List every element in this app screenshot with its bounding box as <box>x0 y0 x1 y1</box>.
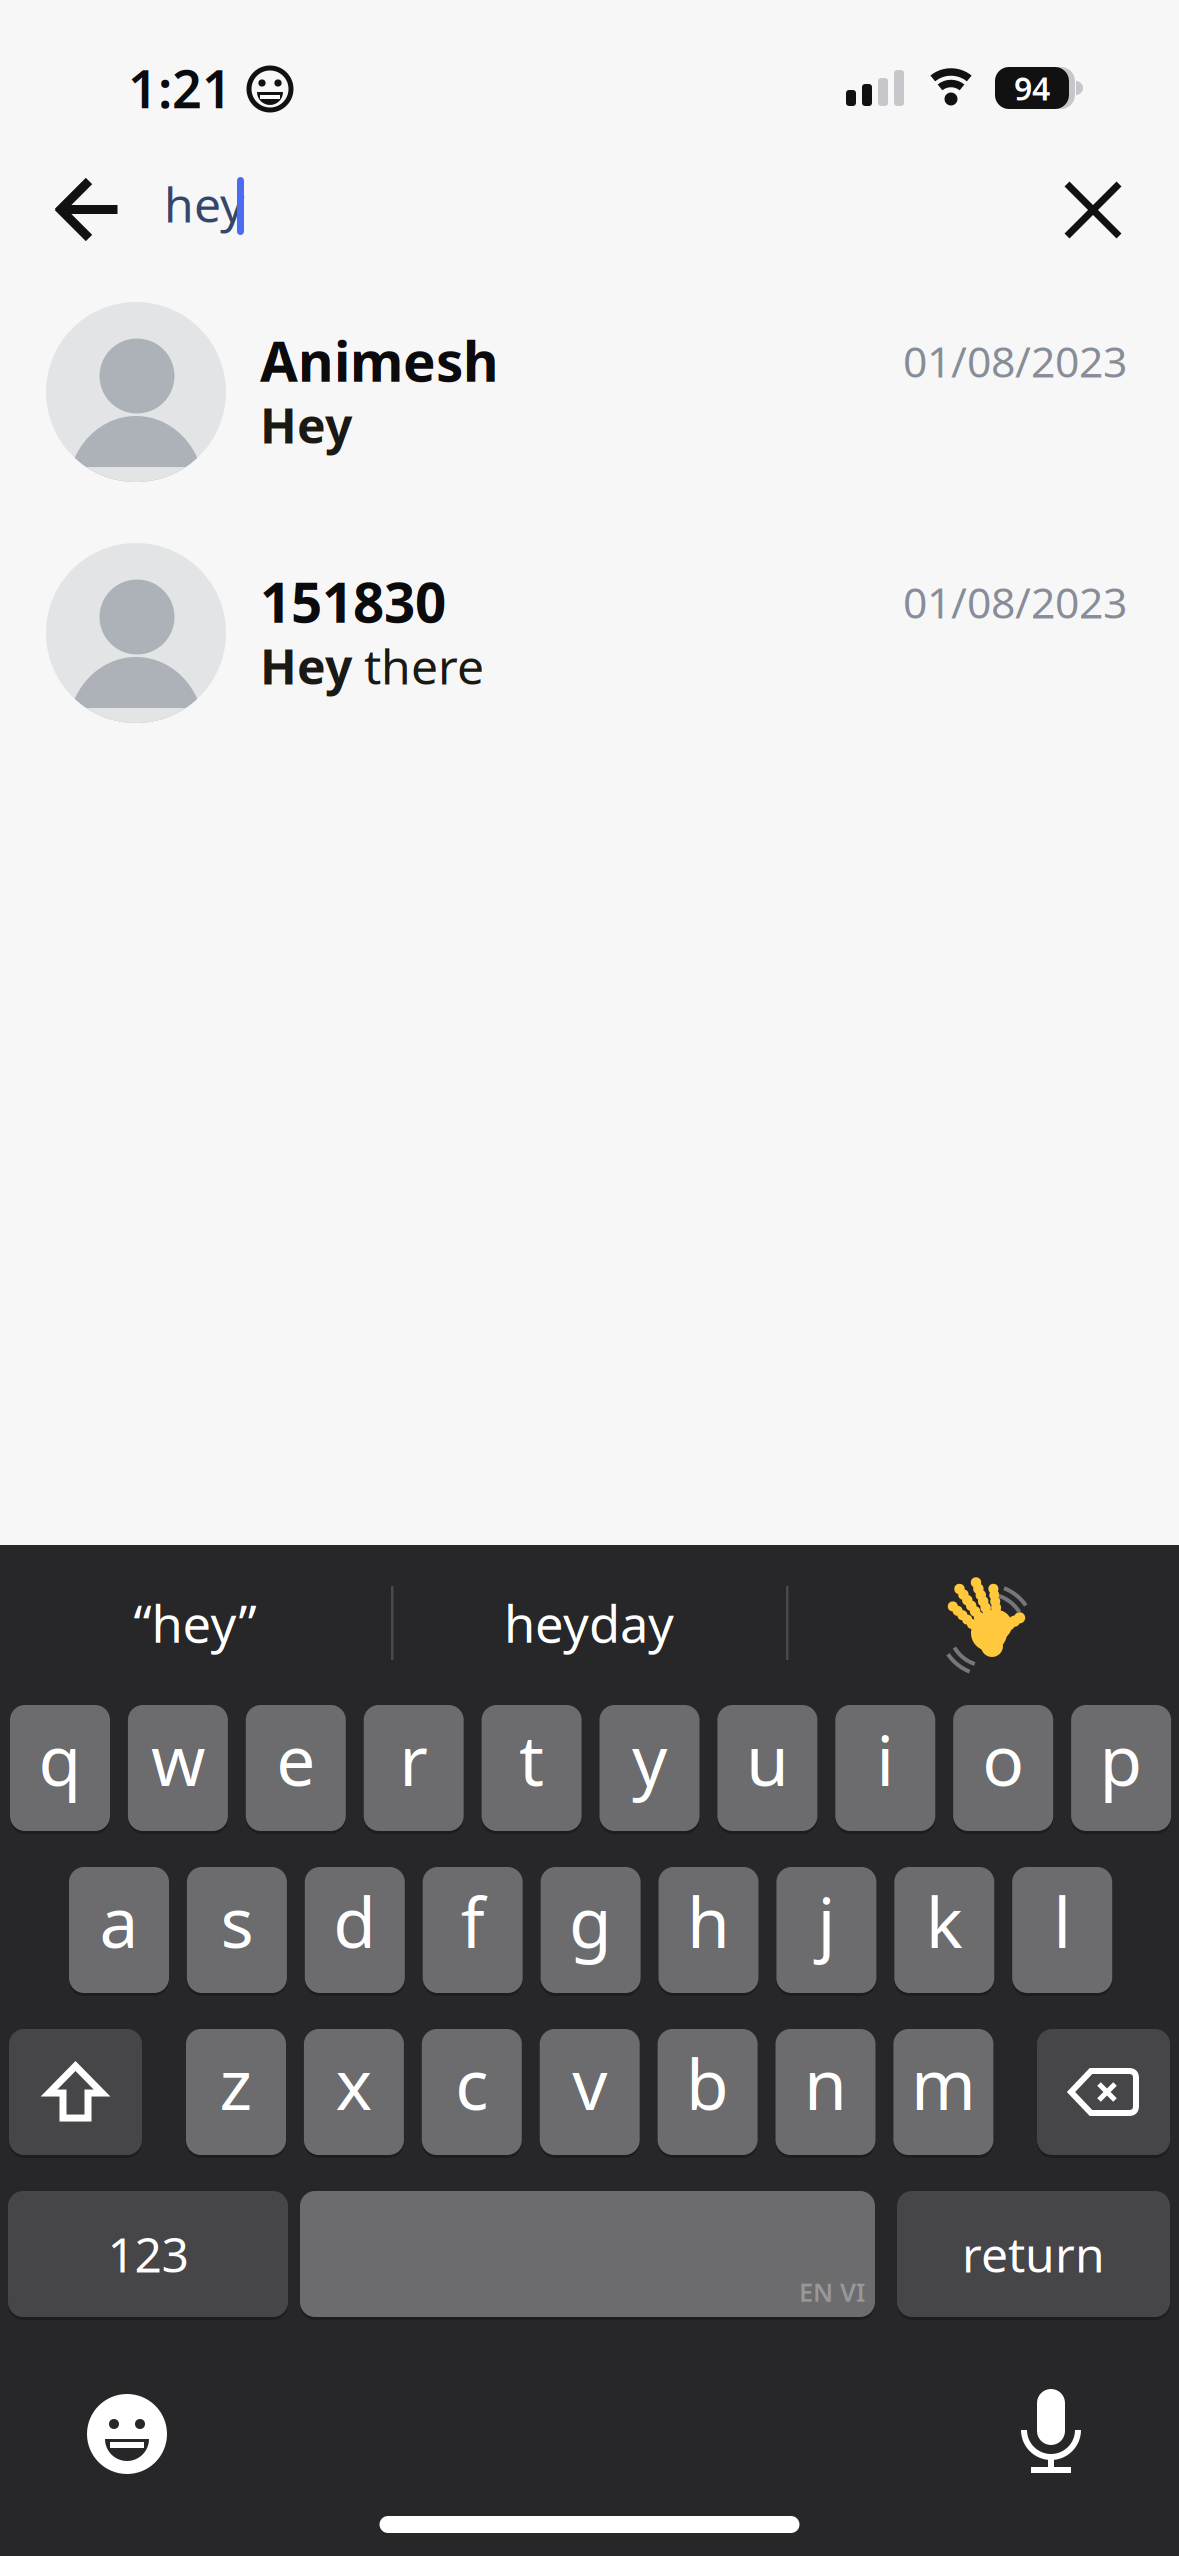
button[interactable]: d <box>305 1867 405 1993</box>
staticText: z <box>219 2037 252 2129</box>
staticText: 94 <box>1014 67 1050 109</box>
staticText: v <box>572 2037 607 2129</box>
staticText: r <box>399 1713 428 1805</box>
staticText: q <box>38 1713 81 1805</box>
staticText: 01/08/2023 <box>903 574 1127 630</box>
button[interactable]: j <box>776 1867 876 1993</box>
staticText: return <box>962 2222 1105 2286</box>
staticText: o <box>982 1713 1024 1805</box>
staticText: t <box>519 1713 544 1805</box>
staticText: “hey” <box>133 1589 256 1657</box>
staticText: h <box>687 1875 730 1967</box>
staticText: f <box>461 1875 485 1967</box>
button[interactable]: 123 <box>8 2191 288 2317</box>
staticText: i <box>876 1713 894 1805</box>
staticText: a <box>99 1875 138 1967</box>
staticText: x <box>335 2037 372 2129</box>
button[interactable]: i <box>835 1705 935 1831</box>
button[interactable]: Back <box>39 159 139 259</box>
staticText: u <box>746 1713 789 1805</box>
button[interactable]: c <box>422 2029 522 2155</box>
button[interactable]: hey <box>164 159 864 249</box>
staticText: b <box>686 2037 729 2129</box>
button[interactable]: Insert waving hand emoji <box>791 1548 1177 1698</box>
staticText: c <box>455 2037 488 2129</box>
staticText: m <box>911 2037 976 2129</box>
button[interactable]: s <box>187 1867 287 1993</box>
button[interactable]: a <box>69 1867 169 1993</box>
button[interactable]: x <box>304 2029 404 2155</box>
button[interactable]: o <box>953 1705 1053 1831</box>
staticText: g <box>569 1875 612 1967</box>
staticText: l <box>1053 1875 1071 1967</box>
button[interactable]: e <box>246 1705 346 1831</box>
button[interactable]: 151830 <box>0 512 1179 753</box>
button[interactable]: w <box>128 1705 228 1831</box>
staticText: s <box>220 1875 253 1967</box>
button[interactable]: return <box>897 2191 1170 2317</box>
staticText: EN VI <box>799 2275 865 2309</box>
staticText: d <box>333 1875 376 1967</box>
button[interactable]: b <box>658 2029 758 2155</box>
button[interactable]: z <box>186 2029 286 2155</box>
button[interactable]: m <box>893 2029 993 2155</box>
button[interactable]: l <box>1012 1867 1112 1993</box>
staticText: 1:21 <box>128 53 232 123</box>
staticText: 01/08/2023 <box>903 333 1127 389</box>
staticText: y <box>632 1713 667 1805</box>
button[interactable]: n <box>775 2029 875 2155</box>
staticText: Hey there <box>260 634 484 698</box>
staticText: n <box>804 2037 847 2129</box>
staticText: Animesh <box>260 324 499 397</box>
staticText: heyday <box>504 1589 674 1657</box>
button[interactable]: heyday <box>396 1548 782 1698</box>
button[interactable]: Space <box>300 2191 875 2317</box>
staticText: Hey <box>260 393 352 457</box>
staticText: 151830 <box>260 565 446 638</box>
button[interactable]: t <box>482 1705 582 1831</box>
button[interactable]: “hey” <box>2 1548 388 1698</box>
button[interactable]: f <box>423 1867 523 1993</box>
button[interactable]: Animesh <box>0 271 1179 512</box>
staticText: j <box>817 1875 835 1967</box>
staticText: p <box>1100 1713 1143 1805</box>
button[interactable]: Dictation <box>991 2372 1111 2492</box>
staticText: k <box>926 1875 963 1967</box>
button[interactable]: y <box>599 1705 699 1831</box>
button[interactable]: Emoji <box>67 2372 187 2496</box>
button[interactable]: p <box>1071 1705 1171 1831</box>
button[interactable]: Clear search <box>1043 160 1143 260</box>
staticText: 123 <box>107 2222 188 2286</box>
button[interactable]: v <box>540 2029 640 2155</box>
staticText: w <box>151 1713 205 1805</box>
button[interactable]: Delete <box>1037 2029 1170 2155</box>
staticText: e <box>276 1713 315 1805</box>
button[interactable]: g <box>541 1867 641 1993</box>
button[interactable]: q <box>10 1705 110 1831</box>
button[interactable]: u <box>717 1705 817 1831</box>
staticText: hey <box>164 172 244 236</box>
button[interactable]: r <box>364 1705 464 1831</box>
button[interactable]: h <box>658 1867 758 1993</box>
button[interactable]: Shift <box>9 2029 142 2155</box>
button[interactable]: k <box>894 1867 994 1993</box>
